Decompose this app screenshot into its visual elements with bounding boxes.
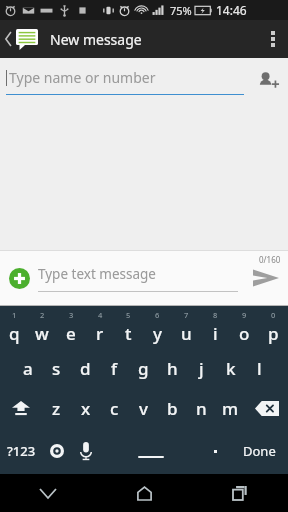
staticText: s — [52, 357, 61, 380]
button[interactable]: 1 — [0, 306, 28, 348]
button[interactable]: Done — [230, 428, 288, 474]
staticText: n — [196, 397, 207, 420]
staticText: u — [181, 322, 192, 345]
button[interactable]: g — [129, 348, 158, 388]
button[interactable]: m — [216, 388, 245, 428]
button[interactable]: Space — [100, 428, 201, 474]
staticText: e — [66, 322, 76, 345]
staticText: w — [35, 322, 49, 345]
button[interactable]: s — [42, 348, 71, 388]
staticText: g — [138, 357, 149, 380]
staticText: x — [81, 397, 91, 420]
staticText: z — [52, 397, 61, 420]
button[interactable]: Type name or number — [6, 68, 248, 95]
staticText: 7 — [184, 310, 189, 320]
staticText: j — [199, 357, 204, 380]
staticText: 0/160 — [259, 254, 281, 265]
staticText: c — [110, 397, 119, 420]
staticText: o — [239, 322, 250, 345]
staticText: f — [111, 357, 118, 380]
staticText: d — [80, 357, 91, 380]
button[interactable]: Recent apps — [192, 474, 288, 512]
staticText: k — [226, 357, 236, 380]
staticText: r — [96, 322, 104, 345]
button[interactable]: More options — [258, 20, 288, 58]
button[interactable]: c — [100, 388, 129, 428]
staticText: y — [153, 322, 162, 345]
button[interactable]: Add attachment — [0, 251, 38, 305]
button[interactable]: Voice input — [71, 428, 100, 474]
button[interactable]: v — [129, 388, 158, 428]
button[interactable] — [201, 428, 230, 474]
button[interactable]: k — [216, 348, 245, 388]
staticText: t — [125, 322, 132, 345]
staticText: 1 — [12, 310, 17, 320]
button[interactable]: 3 — [56, 306, 85, 348]
staticText: 2 — [40, 310, 45, 320]
button[interactable]: Home — [96, 474, 192, 512]
button[interactable]: n — [187, 388, 216, 428]
button[interactable]: x — [71, 388, 100, 428]
staticText: 5 — [126, 310, 131, 320]
button[interactable]: 9 — [230, 306, 259, 348]
staticText: i — [213, 322, 218, 345]
button[interactable]: Add recipient from contacts — [248, 58, 288, 104]
staticText: a — [23, 357, 33, 380]
button[interactable]: 6 — [143, 306, 172, 348]
staticText: l — [257, 357, 262, 380]
staticText: Type text message — [38, 265, 156, 283]
button[interactable]: 4 — [85, 306, 114, 348]
button[interactable]: Delete — [245, 388, 288, 428]
staticText: p — [268, 322, 279, 345]
button[interactable]: a — [13, 348, 42, 388]
button[interactable]: f — [100, 348, 129, 388]
staticText: h — [167, 357, 178, 380]
staticText: Type name or number — [9, 68, 156, 87]
button[interactable]: 7 — [172, 306, 201, 348]
button[interactable]: Shift — [0, 388, 42, 428]
button[interactable]: Hide keyboard — [0, 474, 96, 512]
button[interactable]: 0 — [259, 306, 288, 348]
staticText: 6 — [155, 310, 160, 320]
staticText: 3 — [69, 310, 74, 320]
staticText: ?123 — [7, 442, 36, 460]
staticText: 4 — [98, 310, 103, 320]
staticText: 0 — [271, 310, 276, 320]
staticText: q — [9, 322, 20, 345]
staticText: 8 — [213, 310, 218, 320]
staticText: Done — [243, 442, 276, 460]
button[interactable]: 5 — [114, 306, 143, 348]
staticText: m — [222, 397, 239, 420]
button[interactable]: z — [42, 388, 71, 428]
staticText: New message — [50, 30, 142, 49]
button[interactable]: Navigate up — [0, 20, 44, 58]
button[interactable]: d — [71, 348, 100, 388]
staticText: 9 — [242, 310, 247, 320]
button[interactable]: h — [158, 348, 187, 388]
staticText: 75% — [170, 3, 192, 18]
button[interactable]: Keyboard settings — [42, 428, 71, 474]
button[interactable]: j — [187, 348, 216, 388]
button[interactable]: b — [158, 388, 187, 428]
staticText: b — [167, 397, 178, 420]
button[interactable]: Send message — [244, 251, 288, 305]
staticText: v — [139, 397, 148, 420]
button[interactable]: 8 — [201, 306, 230, 348]
button[interactable]: 2 — [28, 306, 56, 348]
button[interactable]: l — [245, 348, 274, 388]
button[interactable]: Type text message — [38, 265, 244, 292]
button[interactable]: ?123 — [0, 428, 42, 474]
staticText: 14:46 — [216, 2, 247, 18]
